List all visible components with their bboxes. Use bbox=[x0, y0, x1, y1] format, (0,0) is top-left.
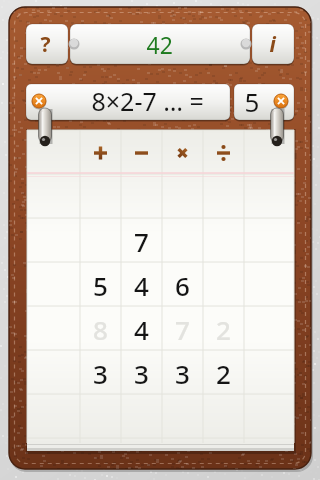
button[interactable]: Cell bbox=[203, 219, 244, 263]
button[interactable]: Equation bbox=[62, 84, 230, 120]
button[interactable]: Cell bbox=[203, 395, 244, 439]
button[interactable]: Cell bbox=[121, 395, 162, 439]
button[interactable]: Cell bbox=[80, 219, 121, 263]
button[interactable]: Cell bbox=[203, 263, 244, 307]
button[interactable]: Cell bbox=[244, 219, 285, 263]
button[interactable]: Clear answer bbox=[270, 84, 294, 120]
button[interactable]: Cell bbox=[80, 351, 121, 395]
button[interactable]: Cell bbox=[162, 395, 203, 439]
button[interactable]: Cell bbox=[121, 175, 162, 219]
button[interactable]: Cell bbox=[80, 395, 121, 439]
button[interactable]: Cell bbox=[203, 175, 244, 219]
button[interactable]: Multiply bbox=[162, 131, 203, 175]
button[interactable]: Cell bbox=[162, 263, 203, 307]
button[interactable]: Cell bbox=[244, 307, 285, 351]
button[interactable]: Cell bbox=[121, 263, 162, 307]
button[interactable]: Answer bbox=[234, 84, 270, 120]
button[interactable]: Cell bbox=[203, 307, 244, 351]
button[interactable]: Help bbox=[26, 24, 68, 64]
button[interactable]: Cell bbox=[244, 395, 285, 439]
button[interactable]: Cell bbox=[162, 175, 203, 219]
button[interactable]: Cell bbox=[244, 263, 285, 307]
button[interactable]: Cell bbox=[80, 263, 121, 307]
button[interactable]: Cell bbox=[80, 175, 121, 219]
button[interactable]: Cell bbox=[244, 351, 285, 395]
button[interactable]: Info bbox=[252, 24, 294, 64]
button[interactable]: Cell bbox=[162, 351, 203, 395]
button[interactable]: Minus bbox=[121, 131, 162, 175]
button[interactable]: Cell bbox=[162, 219, 203, 263]
button[interactable]: Divide bbox=[203, 131, 244, 175]
button[interactable]: Plus bbox=[80, 131, 121, 175]
button[interactable]: Cell bbox=[121, 307, 162, 351]
button[interactable]: Cell bbox=[121, 219, 162, 263]
button[interactable]: Cell bbox=[203, 351, 244, 395]
button[interactable]: Cell bbox=[80, 307, 121, 351]
button[interactable]: Cell bbox=[244, 175, 285, 219]
button[interactable]: Clear equation bbox=[26, 84, 62, 120]
button[interactable]: Cell bbox=[162, 307, 203, 351]
button[interactable]: Score 42 bbox=[70, 24, 250, 64]
button[interactable]: Cell bbox=[121, 351, 162, 395]
